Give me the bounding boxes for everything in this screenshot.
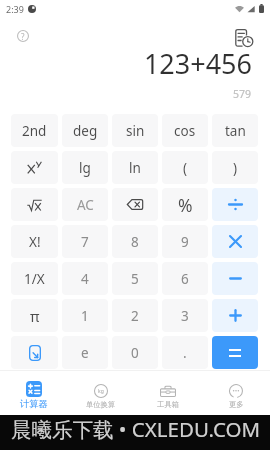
button[interactable] [212,262,258,295]
staticText: e [81,344,89,362]
button[interactable]: 1 [62,299,108,332]
staticText: 7 [81,233,89,251]
button[interactable]: cos [162,114,208,147]
button[interactable]: . [162,336,208,369]
staticText: 2:39 [6,3,24,15]
staticText: ( [183,159,188,177]
staticText: 计算器 [20,398,48,410]
button[interactable]: 3 [162,299,208,332]
button[interactable]: 4 [62,262,108,295]
button[interactable]: 5 [112,262,158,295]
button[interactable]: 8 [112,225,158,258]
staticText: 6 [181,270,189,288]
button[interactable]: e [62,336,108,369]
button[interactable]: tan [212,114,258,147]
staticText: lg [79,159,91,177]
staticText: ) [233,159,238,177]
staticText: X! [29,233,41,251]
button[interactable] [11,151,58,184]
staticText: tan [225,122,246,140]
staticText: 9 [181,233,189,251]
button[interactable]: ( [162,151,208,184]
button[interactable]: % [162,188,208,221]
button[interactable]: 2nd [11,114,58,147]
button[interactable]: Backspace [112,188,158,221]
button[interactable]: 9 [162,225,208,258]
button[interactable] [212,188,258,221]
staticText: π [30,306,40,326]
button[interactable]: deg [62,114,108,147]
button[interactable]: lg [62,151,108,184]
staticText: 0 [131,344,139,362]
other: Expand [29,345,41,361]
staticText: . [183,344,187,362]
button[interactable]: 更多 [202,370,270,415]
button[interactable]: Expand [11,336,58,369]
staticText: 3 [181,307,189,325]
button[interactable] [212,299,258,332]
button[interactable]: 1/X [11,262,58,295]
button[interactable]: π [11,299,58,332]
button[interactable]: 工具箱 [134,370,202,415]
staticText: ? [21,31,25,42]
staticText: sin [126,122,145,140]
staticText: 579 [233,87,252,101]
button[interactable]: 0 [112,336,158,369]
button[interactable]: kg [67,370,134,415]
button[interactable]: History [231,25,257,51]
staticText: 2 [131,307,139,325]
staticText: 晨曦乐下载 • CXLEDU.COM [11,415,261,443]
staticText: 4 [81,270,89,288]
button[interactable]: sin [112,114,158,147]
button[interactable]: X! [11,225,58,258]
staticText: 1 [81,307,89,325]
button[interactable]: 6 [162,262,208,295]
staticText: 更多 [229,400,244,409]
staticText: ln [129,159,141,177]
staticText: 工具箱 [157,400,179,409]
button[interactable]: ) [212,151,258,184]
button[interactable]: Help [13,26,33,46]
staticText: kg [98,388,104,395]
button[interactable] [212,336,258,369]
staticText: 5 [131,270,139,288]
staticText: AC [77,196,94,214]
button[interactable] [212,225,258,258]
button[interactable]: ln [112,151,158,184]
button[interactable]: 2 [112,299,158,332]
staticText: 1/X [24,270,45,288]
staticText: 123+456 [143,45,252,82]
staticText: 8 [131,233,139,251]
staticText: 单位换算 [86,400,116,409]
button[interactable] [11,188,58,221]
other: Backspace [127,199,143,210]
staticText: 2nd [22,122,47,140]
staticText: % [178,193,193,217]
button[interactable]: 计算器 [0,370,67,415]
staticText: deg [73,122,98,140]
staticText: cos [174,122,196,140]
button[interactable]: 7 [62,225,108,258]
button[interactable]: AC [62,188,108,221]
